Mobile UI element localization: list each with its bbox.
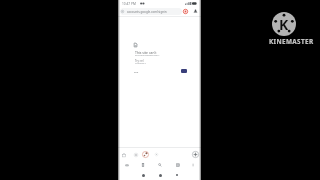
button[interactable]: Reload bbox=[181, 69, 187, 73]
button[interactable]: Profile bbox=[192, 8, 199, 15]
button[interactable]: Reload page bbox=[141, 150, 150, 159]
button[interactable]: Home bbox=[156, 171, 164, 179]
button[interactable]: Address bar bbox=[120, 8, 182, 15]
staticText: accounts.google.com t bbox=[135, 54, 160, 57]
staticText: Try: rel bbox=[135, 59, 144, 63]
staticText: K bbox=[279, 15, 289, 34]
button[interactable]: Back bbox=[139, 171, 147, 179]
staticText: Checking t bbox=[135, 62, 146, 65]
button[interactable]: Tabs bbox=[138, 160, 147, 169]
staticText: ERR bbox=[134, 70, 139, 73]
button[interactable]: Back bbox=[131, 150, 140, 159]
staticText: This site can't bbox=[135, 50, 157, 55]
button[interactable]: Recents bbox=[173, 171, 181, 179]
button[interactable]: Home bbox=[122, 160, 131, 169]
button[interactable]: Apps bbox=[173, 160, 182, 169]
staticText: KINEMASTER bbox=[269, 37, 314, 46]
button[interactable]: Search bbox=[155, 160, 164, 169]
staticText: 10:47 PM bbox=[122, 2, 136, 6]
staticText: accounts.google.com/signin bbox=[127, 10, 167, 14]
button[interactable]: Home bbox=[119, 150, 128, 159]
button[interactable]: Share bbox=[152, 150, 161, 159]
button[interactable]: Menu bbox=[188, 160, 197, 169]
button[interactable]: Site information bbox=[182, 8, 189, 15]
button[interactable]: New tab bbox=[191, 150, 200, 159]
